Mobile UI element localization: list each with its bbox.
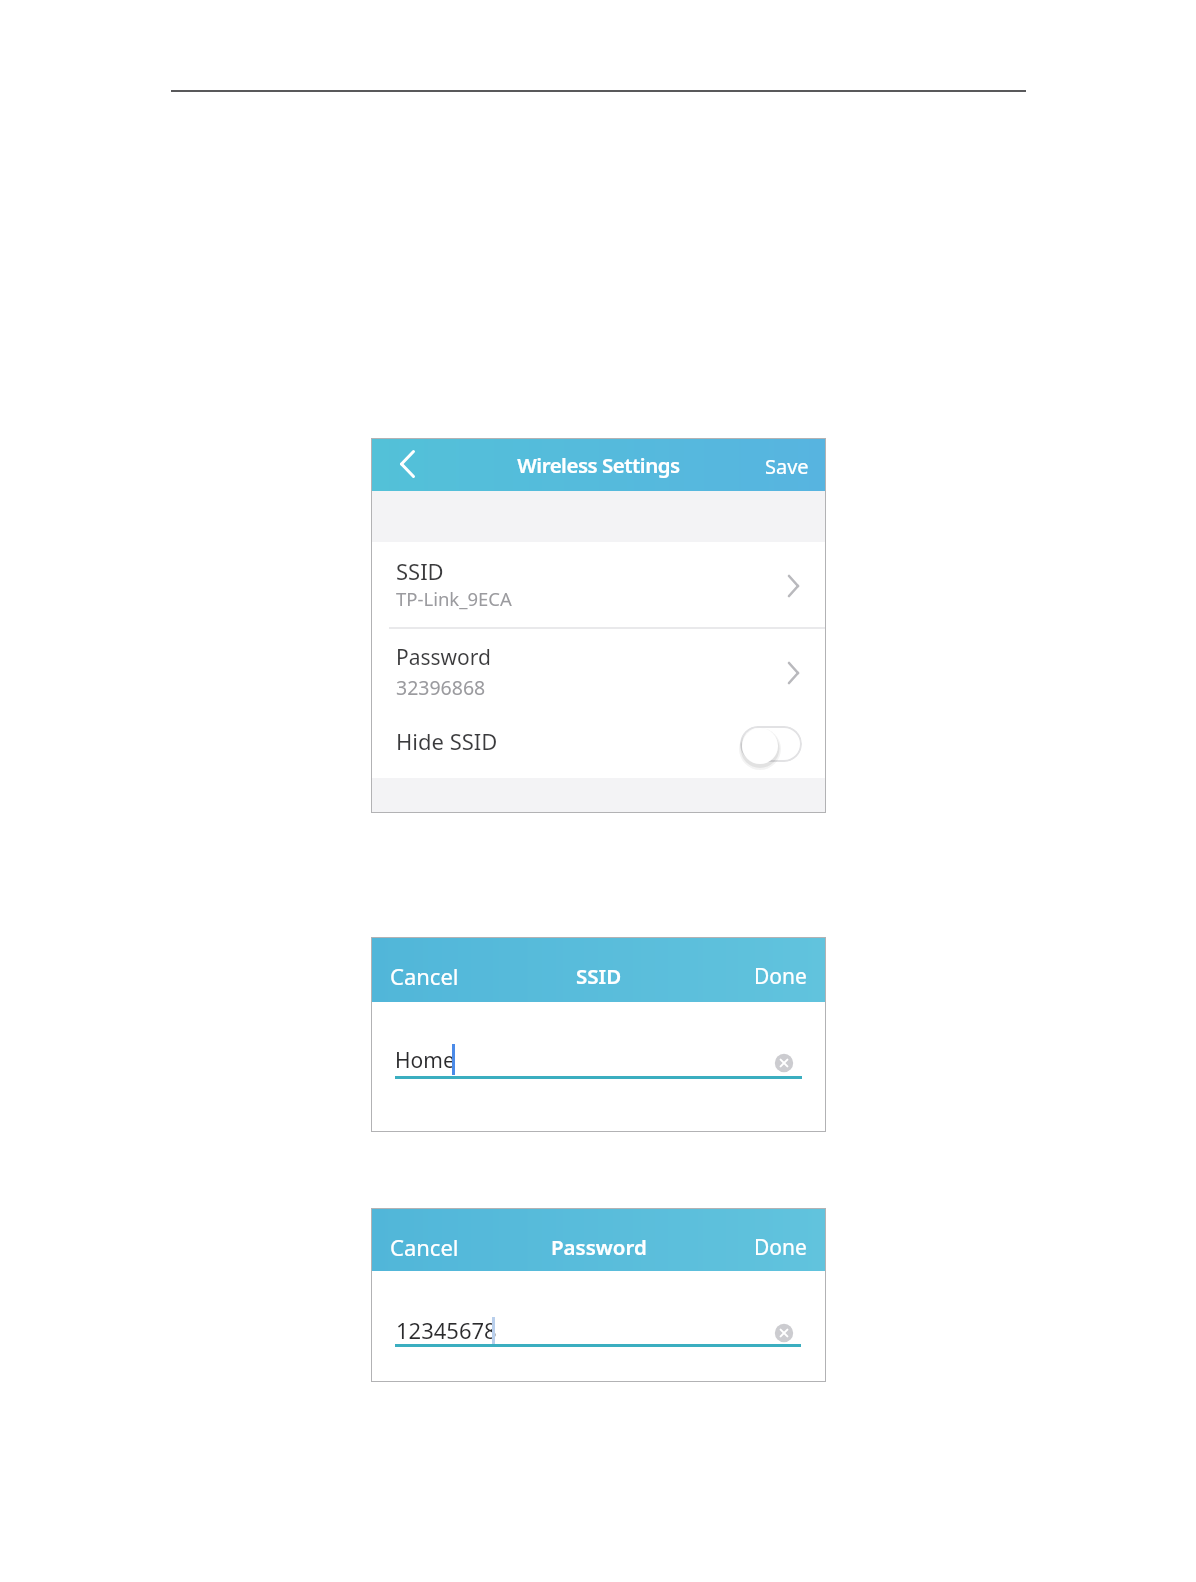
button[interactable]	[774, 1053, 794, 1073]
button[interactable]	[371, 628, 826, 713]
staticText: 12345678	[396, 1315, 497, 1345]
staticText: Cancel	[390, 1232, 459, 1262]
staticText: Password	[551, 1233, 647, 1261]
staticText: SSID	[576, 962, 622, 990]
button[interactable]	[385, 438, 431, 491]
staticText: Done	[754, 1233, 807, 1262]
button[interactable]	[371, 713, 826, 778]
button[interactable]: Save	[747, 440, 826, 493]
button[interactable]: Cancel	[379, 954, 469, 998]
staticText: Hide SSID	[396, 726, 498, 756]
button[interactable]: Done	[717, 1225, 807, 1269]
button[interactable]	[391, 1303, 806, 1351]
button[interactable]	[371, 542, 826, 627]
button[interactable]: Cancel	[379, 1225, 469, 1269]
staticText: Cancel	[390, 961, 459, 991]
staticText: 32396868	[396, 674, 486, 701]
staticText: Wireless Settings	[517, 451, 680, 479]
button[interactable]	[391, 1032, 806, 1082]
staticText: Password	[396, 643, 491, 672]
button[interactable]	[740, 726, 802, 762]
button[interactable]: Done	[717, 954, 807, 998]
staticText: TP-Link_9ECA	[396, 586, 512, 611]
staticText: Home	[395, 1046, 455, 1075]
staticText: Done	[754, 962, 807, 991]
button[interactable]	[774, 1323, 794, 1343]
staticText: Save	[765, 453, 809, 480]
staticText: SSID	[396, 556, 444, 586]
